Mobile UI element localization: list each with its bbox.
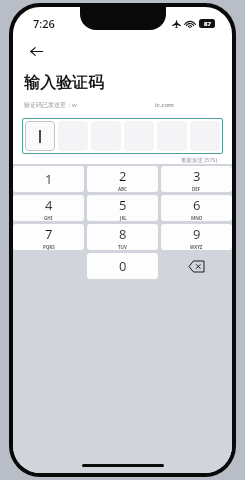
staticText: 5 [119, 196, 127, 214]
staticText: PQRS [43, 244, 55, 250]
button[interactable]: 重新发送 (57S) [181, 156, 218, 164]
staticText: 7 [45, 225, 53, 243]
button[interactable]: 1 [13, 166, 84, 192]
button[interactable]: 5 [87, 195, 158, 221]
button[interactable]: 9 [161, 224, 232, 250]
button[interactable]: 8 [87, 224, 158, 250]
staticText: 8 [119, 225, 127, 243]
staticText: 7:26 [33, 16, 55, 31]
staticText: ABC [118, 186, 127, 192]
staticText: 6 [193, 196, 201, 214]
staticText: 0 [119, 257, 127, 275]
staticText: 验证码已发送至：w [24, 101, 77, 109]
staticText: 1 [45, 170, 53, 188]
button[interactable]: 7 [13, 224, 84, 250]
staticText: TUV [118, 244, 127, 250]
button[interactable]: 2 [87, 166, 158, 192]
button[interactable] [22, 118, 223, 154]
button[interactable]: 3 [161, 166, 232, 192]
staticText: JKL [120, 215, 127, 221]
staticText: 输入验证码 [24, 73, 104, 93]
button[interactable]: 4 [13, 195, 84, 221]
button[interactable]: Backspace [161, 253, 232, 279]
staticText: GHI [44, 215, 53, 221]
staticText: 3 [193, 167, 201, 185]
staticText: DEF [192, 186, 201, 192]
staticText: 87 [204, 20, 211, 28]
staticText: ic.com [155, 101, 174, 109]
staticText: WXYZ [190, 244, 203, 250]
staticText: MNO [191, 215, 203, 221]
button[interactable]: Back [21, 36, 51, 66]
button[interactable]: 0 [87, 253, 158, 279]
staticText: 2 [119, 167, 127, 185]
staticText: 9 [193, 225, 201, 243]
staticText: 4 [45, 196, 53, 214]
button[interactable]: 6 [161, 195, 232, 221]
